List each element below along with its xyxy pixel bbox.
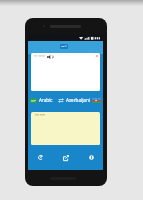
staticText: Arabic [39, 97, 53, 103]
button[interactable]: History [35, 152, 46, 163]
button[interactable]: Clear text [95, 54, 99, 58]
button[interactable]: Share [60, 152, 71, 163]
staticText: Azerbaijani [66, 97, 90, 103]
button[interactable]: Azerbaijani [66, 97, 101, 103]
button[interactable] [31, 112, 100, 145]
button[interactable]: Info [86, 152, 97, 163]
button[interactable]: Clear text [31, 53, 100, 91]
button[interactable]: Arabic [30, 97, 53, 103]
button[interactable]: Swap languages [57, 97, 64, 104]
button[interactable]: App logo [60, 44, 68, 49]
